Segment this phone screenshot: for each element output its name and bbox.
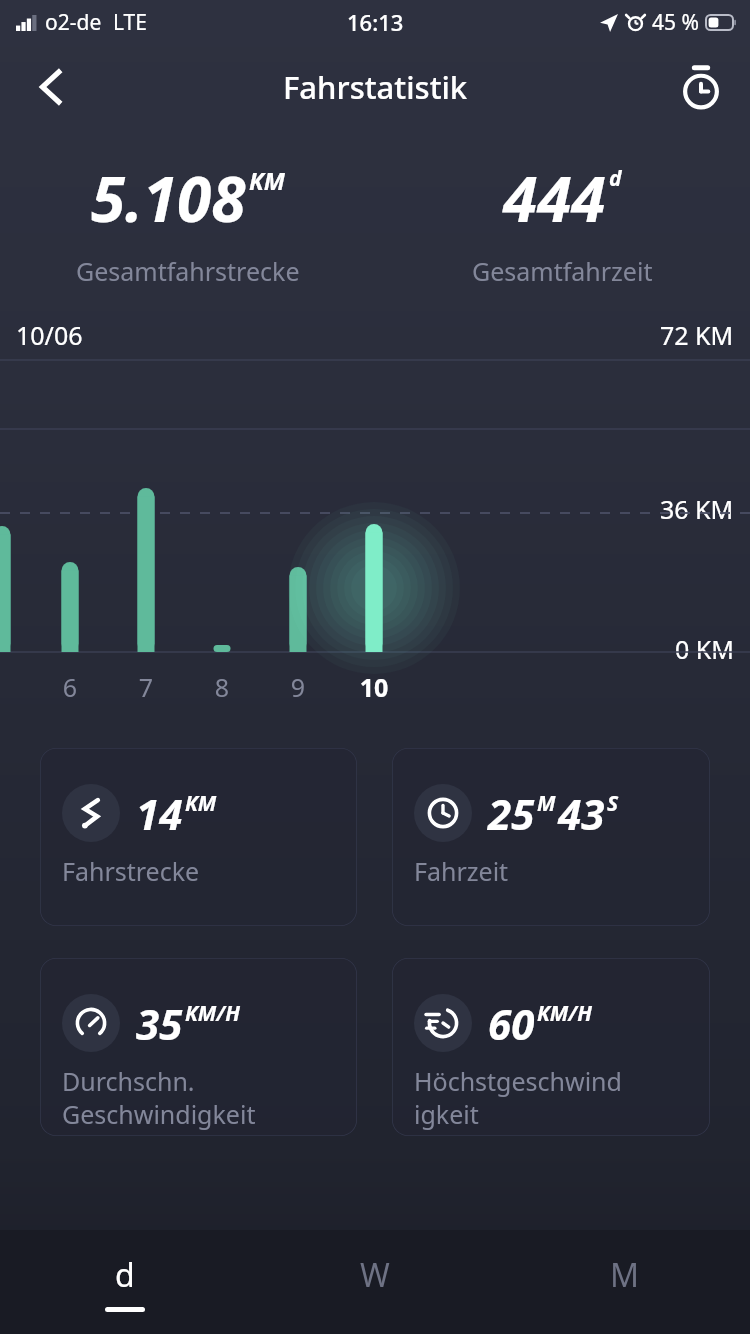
staticText: 25 <box>488 785 535 842</box>
staticText: KM <box>249 164 285 197</box>
button[interactable]: 25 <box>392 748 710 926</box>
staticText: 8 <box>196 670 248 704</box>
staticText: Fahrstatistik <box>283 66 468 108</box>
staticText: 45 % <box>652 8 699 37</box>
button[interactable]: 35 <box>40 958 357 1136</box>
staticText: d <box>609 164 622 193</box>
staticText: Durchschn. Geschwindigkeit <box>62 1064 256 1131</box>
staticText: 0 KM <box>675 632 734 666</box>
staticText: Höchstgeschwind igkeit <box>414 1064 622 1131</box>
staticText: KM/H <box>185 999 240 1028</box>
staticText: 6 <box>44 670 96 704</box>
staticText: Fahrzeit <box>414 854 509 888</box>
staticText: 444 <box>503 156 606 240</box>
staticText: 9 <box>272 670 324 704</box>
staticText: 5.108 <box>91 156 246 240</box>
staticText: KM <box>185 789 217 818</box>
staticText: KM/H <box>537 999 592 1028</box>
staticText: Gesamtfahrstrecke <box>76 254 300 288</box>
staticText: o2-de <box>45 8 102 37</box>
staticText: M <box>610 1253 640 1297</box>
staticText: Fahrstrecke <box>62 854 200 888</box>
staticText: M <box>537 789 556 818</box>
staticText: LTE <box>113 8 147 37</box>
staticText: 43 <box>558 785 605 842</box>
staticText: 72 KM <box>660 318 734 352</box>
staticText: S <box>607 789 619 818</box>
staticText: 7 <box>120 670 172 704</box>
staticText: W <box>360 1253 390 1297</box>
staticText: 35 <box>136 995 183 1052</box>
staticText: 36 KM <box>660 492 734 526</box>
button[interactable]: W <box>250 1230 500 1334</box>
staticText: 14 <box>136 785 183 842</box>
button[interactable]: 14 <box>40 748 357 926</box>
button[interactable]: Stopwatch <box>670 56 732 118</box>
button[interactable]: Back <box>20 55 84 119</box>
button[interactable]: d <box>0 1230 250 1334</box>
staticText: 60 <box>488 995 535 1052</box>
button[interactable]: M <box>500 1230 750 1334</box>
staticText: d <box>115 1253 135 1297</box>
staticText: Gesamtfahrzeit <box>472 254 653 288</box>
staticText: 10/06 <box>16 318 83 352</box>
button[interactable]: 60 <box>392 958 710 1136</box>
staticText: 10 <box>348 670 400 704</box>
staticText: 16:13 <box>347 7 404 37</box>
